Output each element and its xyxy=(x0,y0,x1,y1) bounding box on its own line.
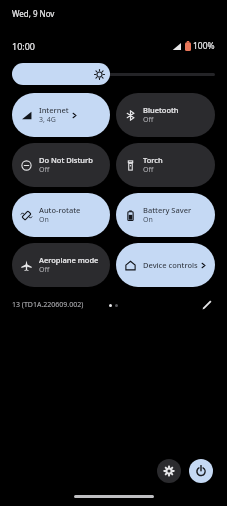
button[interactable]: Settings xyxy=(157,459,181,483)
button[interactable]: Torch xyxy=(116,143,215,187)
staticText: 100% xyxy=(193,40,215,52)
staticText: 10:00 xyxy=(12,40,36,52)
staticText: Auto-rotate xyxy=(39,205,81,215)
button[interactable]: Auto-rotate xyxy=(12,193,110,237)
staticText: Off xyxy=(39,265,50,275)
button[interactable]: Brightness xyxy=(12,63,215,85)
staticText: Off xyxy=(143,115,154,125)
button[interactable]: Device controls xyxy=(116,243,215,287)
staticText: Off xyxy=(39,165,50,175)
staticText: Torch xyxy=(143,155,163,165)
button[interactable]: Do Not Disturb xyxy=(12,143,110,187)
staticText: On xyxy=(39,215,49,225)
staticText: Do Not Disturb xyxy=(39,155,93,165)
button[interactable]: Internet xyxy=(12,93,110,137)
staticText: Internet xyxy=(39,105,69,115)
staticText: Wed, 9 Nov xyxy=(12,8,55,19)
staticText: On xyxy=(143,215,153,225)
staticText: Off xyxy=(143,165,154,175)
button[interactable]: Edit tiles xyxy=(199,297,215,313)
staticText: Aeroplane mode xyxy=(39,255,99,265)
button[interactable]: Battery Saver xyxy=(116,193,215,237)
staticText: Device controls xyxy=(143,260,198,270)
staticText: Battery Saver xyxy=(143,205,192,215)
staticText: 3, 4G xyxy=(39,115,56,125)
button[interactable]: Power xyxy=(189,459,213,483)
button[interactable]: Bluetooth xyxy=(116,93,215,137)
staticText: Bluetooth xyxy=(143,105,179,115)
staticText: 13 (TD1A.220609.002) xyxy=(12,300,84,310)
button[interactable]: Aeroplane mode xyxy=(12,243,110,287)
